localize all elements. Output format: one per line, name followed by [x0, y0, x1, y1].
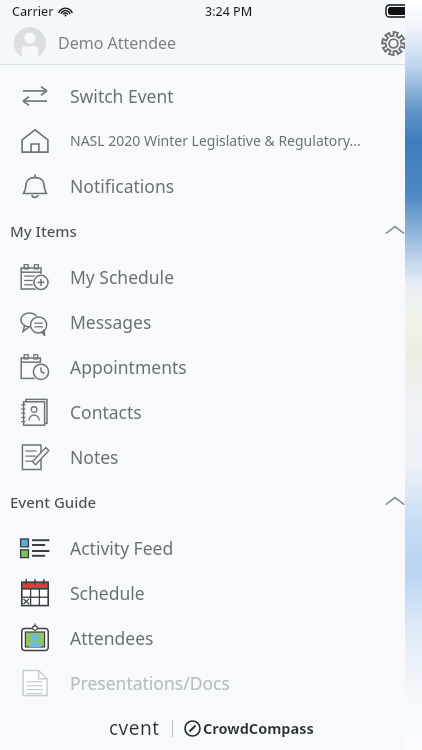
staticText: Notes [70, 445, 119, 469]
button[interactable]: Attendees [0, 615, 422, 660]
staticText: Presentations/Docs [70, 671, 230, 695]
staticText: Event Guide [10, 492, 97, 512]
button[interactable]: Notifications [0, 163, 422, 208]
button[interactable]: My Items [0, 208, 422, 254]
button[interactable]: Notes [0, 434, 422, 479]
staticText: Carrier [12, 3, 54, 20]
button[interactable]: Schedule [0, 570, 422, 615]
staticText: cvent [109, 715, 160, 741]
staticText: Schedule [70, 581, 145, 605]
button[interactable]: Settings [364, 22, 422, 64]
staticText: Messages [70, 310, 152, 334]
staticText: Notifications [70, 174, 175, 198]
button[interactable]: Demo Attendee [0, 22, 364, 64]
staticText: Attendees [70, 626, 154, 650]
staticText: NASL 2020 Winter Legislative & Regulator… [70, 131, 361, 150]
staticText: Activity Feed [70, 536, 174, 560]
staticText: Demo Attendee [58, 32, 177, 54]
staticText: CrowdCompass [203, 718, 314, 738]
staticText: My Items [10, 221, 77, 241]
staticText: 3:24 PM [205, 3, 253, 20]
staticText: Contacts [70, 400, 142, 424]
staticText: My Schedule [70, 265, 175, 289]
button[interactable]: My Schedule [0, 254, 422, 299]
button[interactable]: NASL 2020 Winter Legislative & Regulator… [0, 118, 422, 163]
button[interactable]: Event Guide [0, 479, 422, 525]
button[interactable]: Presentations/Docs [0, 660, 422, 705]
staticText: Switch Event [70, 84, 174, 108]
button[interactable]: Appointments [0, 344, 422, 389]
button[interactable]: Messages [0, 299, 422, 344]
button[interactable]: Switch Event [0, 73, 422, 118]
staticText: Appointments [70, 355, 187, 379]
button[interactable]: Activity Feed [0, 525, 422, 570]
button[interactable]: Contacts [0, 389, 422, 434]
